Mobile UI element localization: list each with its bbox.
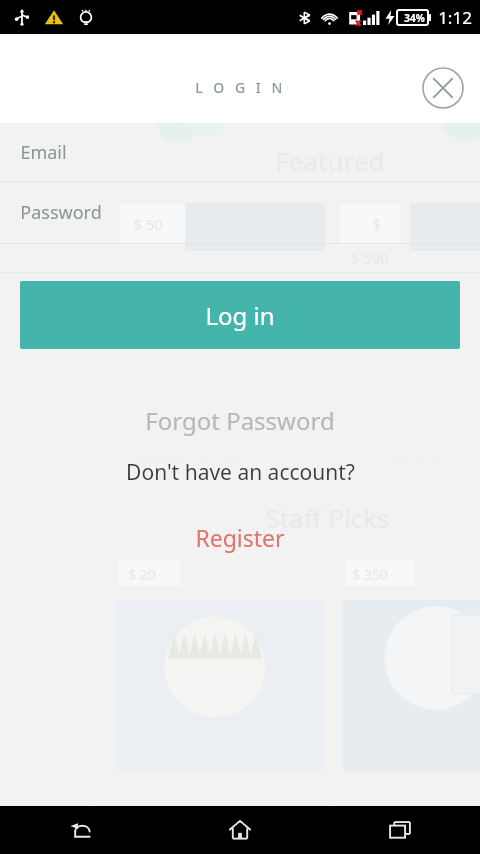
staticText: Forgot Password: [145, 404, 335, 437]
staticText: Staff Picks: [265, 500, 390, 535]
staticText: $ 350: [352, 565, 388, 584]
staticText: A D I D A S S A L E S: [133, 450, 239, 465]
button[interactable]: Close: [420, 65, 466, 111]
button[interactable]: Register: [0, 520, 480, 554]
button[interactable]: Back: [0, 806, 160, 854]
staticText: Email: [20, 140, 67, 165]
staticText: Don't have an account?: [126, 458, 355, 487]
button[interactable]: Log in: [20, 281, 460, 349]
button[interactable]: Home: [160, 806, 320, 854]
button[interactable]: Email: [0, 123, 480, 181]
button[interactable]: Recents: [320, 806, 480, 854]
staticText: $: [372, 214, 381, 234]
staticText: Log in: [205, 299, 275, 332]
staticText: $ 590: [350, 248, 389, 268]
button[interactable]: Forgot Password: [0, 402, 480, 438]
staticText: Register: [195, 522, 285, 553]
button[interactable]: Password: [0, 182, 480, 243]
staticText: $ 20: [128, 565, 156, 584]
staticText: 34%: [404, 11, 425, 25]
staticText: $ 50: [133, 214, 163, 234]
staticText: Featured: [275, 143, 385, 178]
staticText: L O G I N: [195, 78, 286, 97]
staticText: Password: [20, 200, 102, 225]
staticText: 1:12: [438, 6, 472, 29]
